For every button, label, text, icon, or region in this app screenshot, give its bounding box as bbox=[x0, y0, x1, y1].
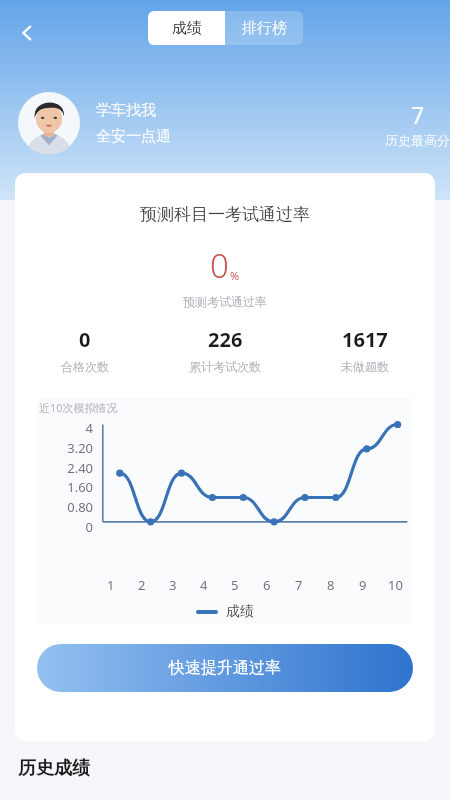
button[interactable]: 1617 bbox=[295, 326, 435, 374]
staticText: 排行榜 bbox=[242, 19, 287, 38]
button[interactable]: 226 bbox=[155, 326, 295, 374]
button[interactable]: 快速提升通过率 bbox=[37, 644, 413, 692]
staticText: 历史成绩 bbox=[18, 757, 90, 780]
staticText: 1617 bbox=[342, 326, 388, 353]
staticText: 1 bbox=[107, 576, 115, 594]
staticText: 2.40 bbox=[67, 459, 93, 477]
staticText: 0.80 bbox=[67, 498, 93, 516]
staticText: 累计考试次数 bbox=[189, 359, 261, 374]
staticText: 未做题数 bbox=[341, 359, 389, 374]
button[interactable]: 成绩 bbox=[148, 11, 225, 45]
staticText: 成绩 bbox=[226, 603, 254, 621]
staticText: 8 bbox=[327, 576, 335, 594]
staticText: % bbox=[230, 268, 240, 283]
staticText: 预测考试通过率 bbox=[183, 294, 267, 309]
staticText: 7 bbox=[411, 99, 425, 130]
staticText: 2 bbox=[138, 576, 146, 594]
staticText: 历史最高分 bbox=[385, 132, 450, 148]
staticText: 学车找我 bbox=[96, 101, 156, 120]
staticText: 近10次模拟情况 bbox=[39, 400, 118, 415]
button[interactable]: Back bbox=[6, 12, 48, 54]
staticText: 成绩 bbox=[172, 19, 202, 38]
staticText: 226 bbox=[208, 326, 243, 353]
staticText: 7 bbox=[295, 576, 303, 594]
staticText: 5 bbox=[231, 576, 239, 594]
staticText: 10 bbox=[388, 576, 403, 594]
staticText: 9 bbox=[359, 576, 367, 594]
staticText: 3 bbox=[169, 576, 177, 594]
staticText: 快速提升通过率 bbox=[169, 658, 281, 678]
staticText: 4 bbox=[85, 419, 93, 437]
button[interactable]: 0 bbox=[15, 326, 155, 374]
staticText: 4 bbox=[200, 576, 208, 594]
staticText: 全安一点通 bbox=[96, 127, 171, 146]
staticText: 合格次数 bbox=[61, 359, 109, 374]
button[interactable]: 排行榜 bbox=[225, 11, 303, 45]
staticText: 预测科目一考试通过率 bbox=[140, 204, 310, 225]
staticText: 0 bbox=[210, 243, 229, 288]
other: Profile avatar bbox=[18, 92, 80, 154]
staticText: 6 bbox=[263, 576, 271, 594]
staticText: 1.60 bbox=[67, 478, 93, 496]
staticText: 3.20 bbox=[67, 439, 93, 457]
staticText: 0 bbox=[79, 326, 91, 353]
staticText: 0 bbox=[85, 518, 93, 536]
